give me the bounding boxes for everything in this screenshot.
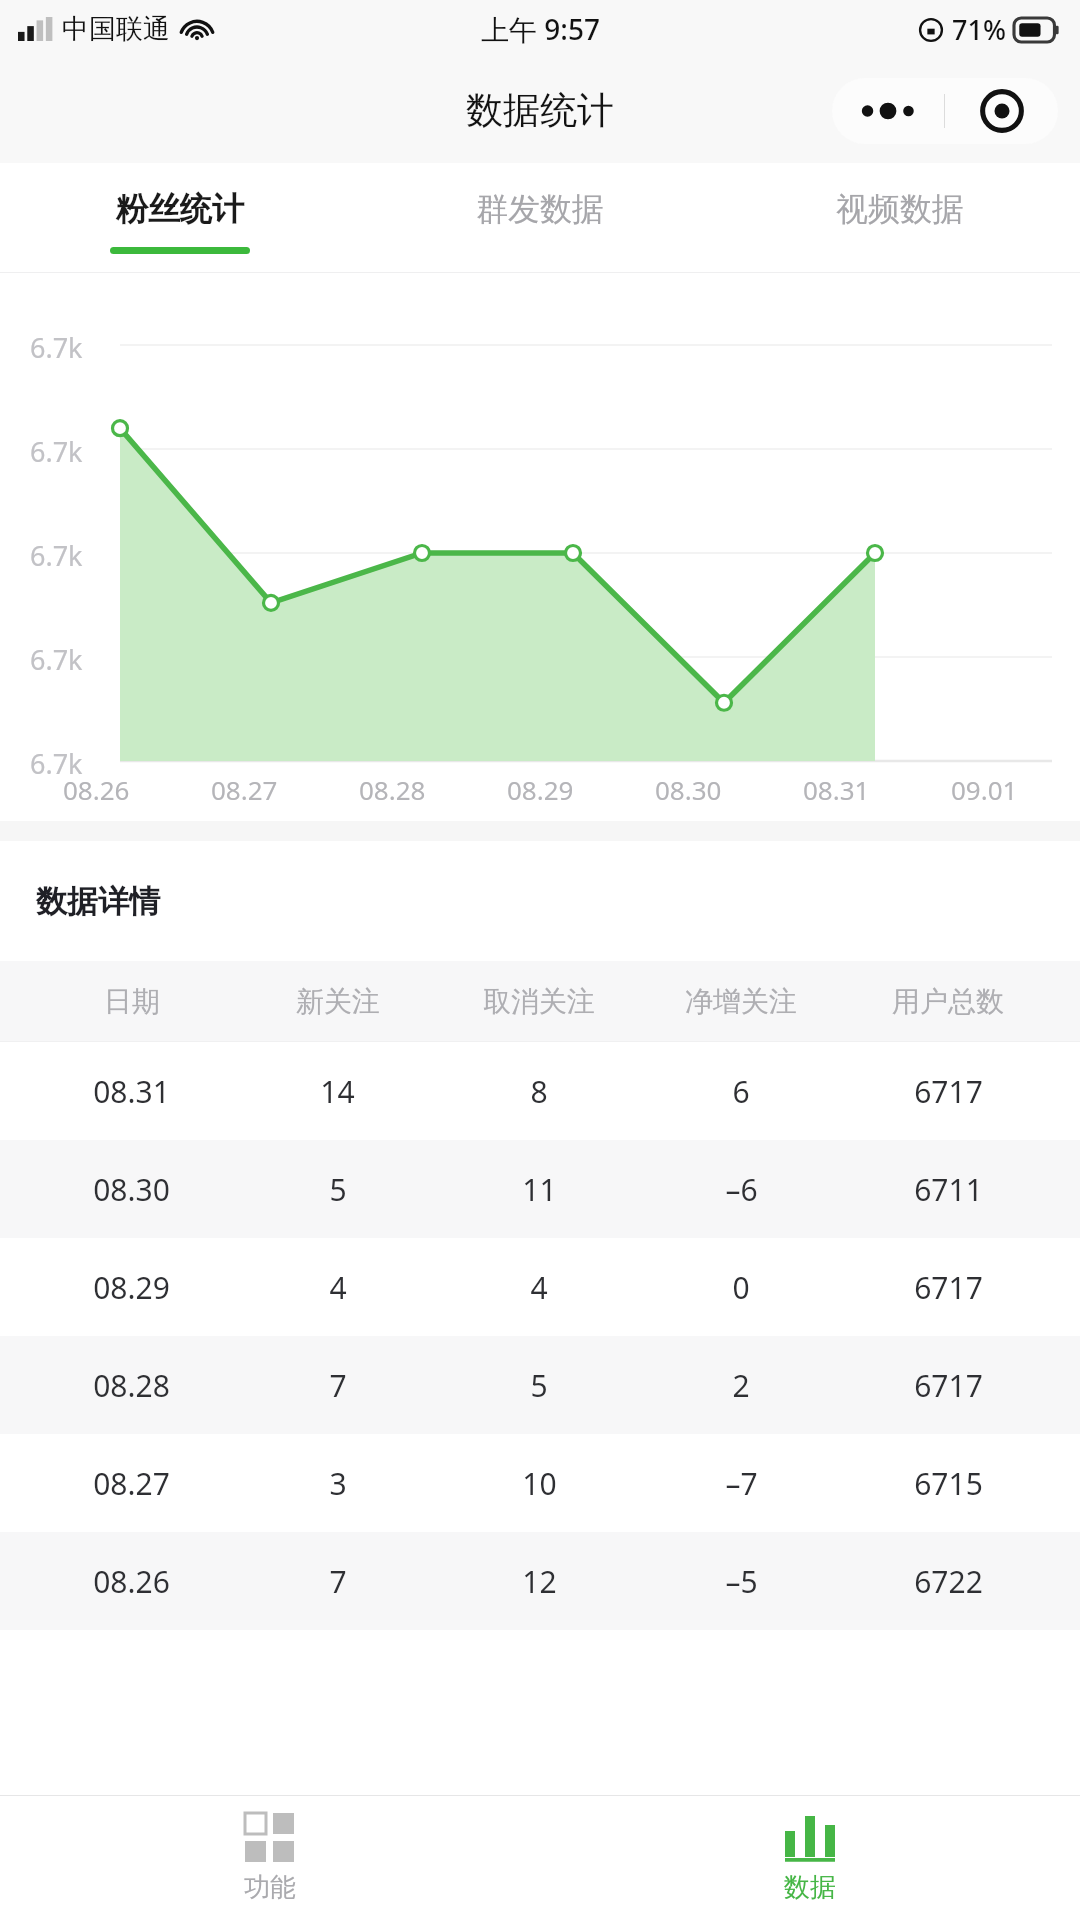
staticText: 4 xyxy=(329,1267,347,1308)
staticText: 5 xyxy=(329,1169,347,1210)
staticText: 08.28 xyxy=(93,1365,170,1406)
staticText: 08.27 xyxy=(211,772,278,807)
staticText: 3 xyxy=(329,1463,347,1504)
button[interactable]: 视频数据 xyxy=(720,163,1080,273)
staticText: 6.7k xyxy=(30,433,83,470)
button[interactable]: 08.27 xyxy=(0,1434,1080,1532)
staticText: 5 xyxy=(530,1365,548,1406)
staticText: 08.31 xyxy=(93,1071,170,1112)
staticText: 数据详情 xyxy=(36,882,160,921)
staticText: 08.29 xyxy=(507,772,574,807)
staticText: 数据 xyxy=(784,1871,836,1904)
staticText: 2 xyxy=(732,1365,750,1406)
staticText: 14 xyxy=(320,1071,355,1112)
staticText: –7 xyxy=(725,1463,758,1504)
button[interactable]: 08.26 xyxy=(0,1532,1080,1630)
staticText: –5 xyxy=(725,1561,758,1602)
staticText: 日期 xyxy=(104,984,160,1019)
staticText: 6711 xyxy=(914,1169,983,1210)
staticText: 6.7k xyxy=(30,537,83,574)
staticText: 新关注 xyxy=(296,984,380,1019)
staticText: 上午 9:57 xyxy=(481,10,600,48)
staticText: 群发数据 xyxy=(476,189,604,229)
button[interactable]: 08.29 xyxy=(0,1238,1080,1336)
staticText: 取消关注 xyxy=(483,984,595,1019)
staticText: –6 xyxy=(725,1169,758,1210)
button[interactable]: 08.31 xyxy=(0,1042,1080,1140)
staticText: 功能 xyxy=(244,1871,296,1904)
staticText: 6717 xyxy=(914,1267,983,1308)
staticText: 用户总数 xyxy=(892,984,1004,1019)
staticText: 6715 xyxy=(914,1463,983,1504)
staticText: 8 xyxy=(530,1071,548,1112)
staticText: 10 xyxy=(522,1463,557,1504)
button[interactable]: 数据 xyxy=(540,1796,1080,1920)
staticText: 08.28 xyxy=(359,772,426,807)
staticText: 08.27 xyxy=(93,1463,170,1504)
button[interactable]: 群发数据 xyxy=(360,163,720,273)
staticText: 0 xyxy=(732,1267,750,1308)
button[interactable]: Close xyxy=(945,78,1058,144)
staticText: 6717 xyxy=(914,1071,983,1112)
staticText: 视频数据 xyxy=(836,189,964,229)
staticText: 09.01 xyxy=(951,772,1018,807)
staticText: 7 xyxy=(329,1561,347,1602)
button[interactable]: 粉丝统计 xyxy=(0,163,360,273)
staticText: 6.7k xyxy=(30,745,83,775)
staticText: 08.30 xyxy=(93,1169,170,1210)
staticText: 6717 xyxy=(914,1365,983,1406)
staticText: 71% xyxy=(952,11,1006,48)
staticText: 08.29 xyxy=(93,1267,170,1308)
staticText: 6722 xyxy=(914,1561,983,1602)
staticText: 7 xyxy=(329,1365,347,1406)
staticText: 08.30 xyxy=(655,772,722,807)
staticText: 6.7k xyxy=(30,641,83,678)
staticText: 净增关注 xyxy=(685,984,797,1019)
staticText: 08.31 xyxy=(803,772,870,807)
staticText: 粉丝统计 xyxy=(116,189,244,229)
staticText: 数据统计 xyxy=(466,87,614,134)
button[interactable]: More xyxy=(832,78,944,144)
staticText: 4 xyxy=(530,1267,548,1308)
staticText: 6.7k xyxy=(30,329,83,366)
staticText: 08.26 xyxy=(63,772,130,807)
button[interactable]: 功能 xyxy=(0,1796,540,1920)
staticText: 中国联通 xyxy=(62,12,170,46)
button[interactable]: 08.28 xyxy=(0,1336,1080,1434)
staticText: 08.26 xyxy=(93,1561,170,1602)
staticText: 12 xyxy=(522,1561,557,1602)
button[interactable]: 08.30 xyxy=(0,1140,1080,1238)
staticText: 11 xyxy=(522,1169,557,1210)
staticText: 6 xyxy=(732,1071,750,1112)
